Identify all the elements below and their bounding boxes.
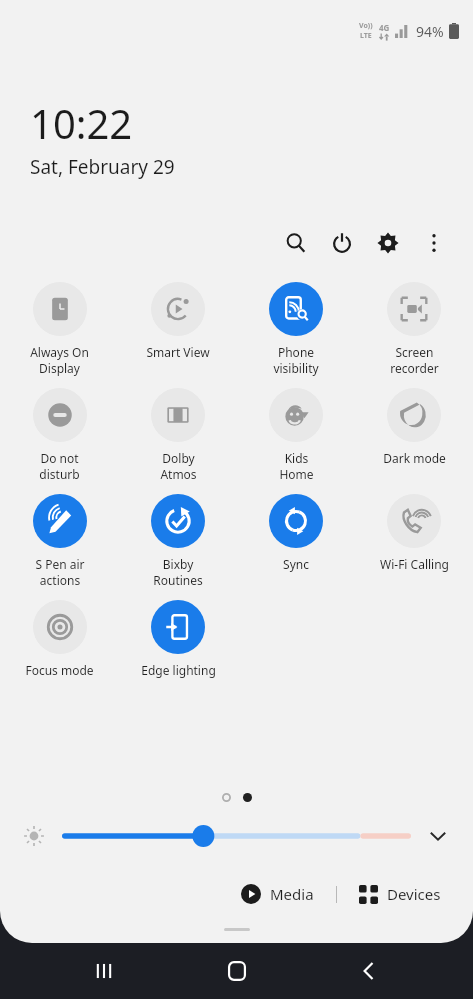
button[interactable]: Do not disturb bbox=[0, 386, 119, 484]
staticText: Screen recorder bbox=[390, 344, 439, 376]
staticText: Wi-Fi Calling bbox=[380, 556, 449, 572]
staticText: 94% bbox=[416, 22, 444, 41]
button[interactable]: Power off bbox=[327, 228, 357, 258]
staticText: Always On Display bbox=[30, 344, 89, 376]
staticText: S Pen air actions bbox=[35, 556, 85, 588]
staticText: Dolby Atmos bbox=[160, 450, 197, 482]
button[interactable]: Edge lighting bbox=[119, 598, 237, 680]
button[interactable]: Wi-Fi Calling bbox=[355, 492, 473, 574]
button[interactable]: More options bbox=[419, 228, 449, 258]
staticText: Phone visibility bbox=[273, 344, 319, 376]
button[interactable]: Recent apps bbox=[76, 943, 132, 999]
button[interactable]: S Pen air actions bbox=[0, 492, 119, 590]
button[interactable]: Expand brightness settings bbox=[421, 819, 455, 853]
staticText: Media bbox=[270, 884, 314, 904]
button[interactable]: Settings bbox=[373, 228, 403, 258]
button[interactable]: Screen recorder bbox=[355, 280, 473, 378]
staticText: Kids Home bbox=[279, 450, 314, 482]
button[interactable]: Bixby Routines bbox=[119, 492, 237, 590]
button[interactable]: Collapse panel bbox=[224, 928, 250, 931]
staticText: Vo)) bbox=[359, 21, 373, 31]
staticText: LTE bbox=[360, 31, 372, 41]
staticText: Sync bbox=[283, 556, 309, 572]
staticText: Sat, February 29 bbox=[30, 154, 175, 180]
staticText: Edge lighting bbox=[141, 662, 216, 678]
button[interactable]: Sync bbox=[237, 492, 355, 574]
staticText: 4G bbox=[379, 22, 390, 33]
staticText: 10:22 bbox=[30, 96, 133, 150]
staticText: Devices bbox=[387, 884, 441, 904]
button[interactable]: Home bbox=[209, 943, 265, 999]
staticText: Smart View bbox=[146, 344, 210, 360]
button[interactable]: Focus mode bbox=[0, 598, 119, 680]
button[interactable]: Media bbox=[235, 878, 320, 910]
staticText: Focus mode bbox=[25, 662, 94, 678]
staticText: Do not disturb bbox=[39, 450, 80, 482]
button[interactable]: Kids Home bbox=[237, 386, 355, 484]
button[interactable]: Brightness bbox=[18, 820, 50, 852]
staticText: Bixby Routines bbox=[153, 556, 203, 588]
button[interactable]: Back bbox=[341, 943, 397, 999]
button[interactable]: Smart View bbox=[119, 280, 237, 362]
button[interactable]: Search bbox=[281, 228, 311, 258]
button[interactable]: Always On Display bbox=[0, 280, 119, 378]
button[interactable]: Brightness slider bbox=[62, 821, 411, 851]
staticText: Dark mode bbox=[383, 450, 446, 466]
button[interactable]: Devices bbox=[353, 878, 447, 910]
button[interactable]: Dolby Atmos bbox=[119, 386, 237, 484]
button[interactable]: Dark mode bbox=[355, 386, 473, 468]
button[interactable]: Phone visibility bbox=[237, 280, 355, 378]
